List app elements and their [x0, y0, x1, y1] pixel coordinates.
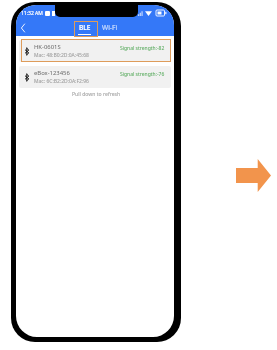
staticText: Mac: 6C:B2:2D:0A:F2:96	[34, 78, 89, 85]
button[interactable]: Wi-Fi	[98, 20, 122, 36]
staticText: HK-0601S	[34, 43, 61, 51]
staticText: 11:32 AM	[21, 10, 43, 17]
button[interactable]: Back	[16, 19, 29, 36]
staticText: Mac: 48:B0:2D:0A:45:68	[34, 52, 89, 59]
button[interactable]: HK-0601S	[19, 40, 171, 62]
staticText: Signal strength:-82	[120, 45, 165, 52]
button[interactable]: eBox-123456	[19, 66, 171, 88]
staticText: BLE	[79, 23, 91, 32]
staticText: Signal strength:-76	[120, 71, 165, 78]
staticText: Wi-Fi	[102, 23, 118, 32]
button[interactable]: BLE	[72, 20, 96, 36]
staticText: eBox-123456	[34, 69, 70, 77]
staticText: Pull down to refresh	[72, 91, 121, 98]
